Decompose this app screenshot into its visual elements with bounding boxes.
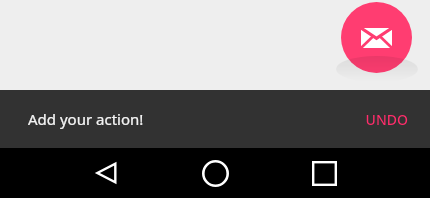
button[interactable]: Compose email	[341, 2, 412, 73]
button[interactable]: Home	[191, 149, 239, 197]
staticText: Add your action!	[28, 109, 144, 129]
staticText: UNDO	[365, 110, 408, 129]
button[interactable]: UNDO	[343, 98, 430, 141]
button[interactable]: Recent apps	[300, 149, 348, 197]
button[interactable]: Back	[83, 149, 131, 197]
